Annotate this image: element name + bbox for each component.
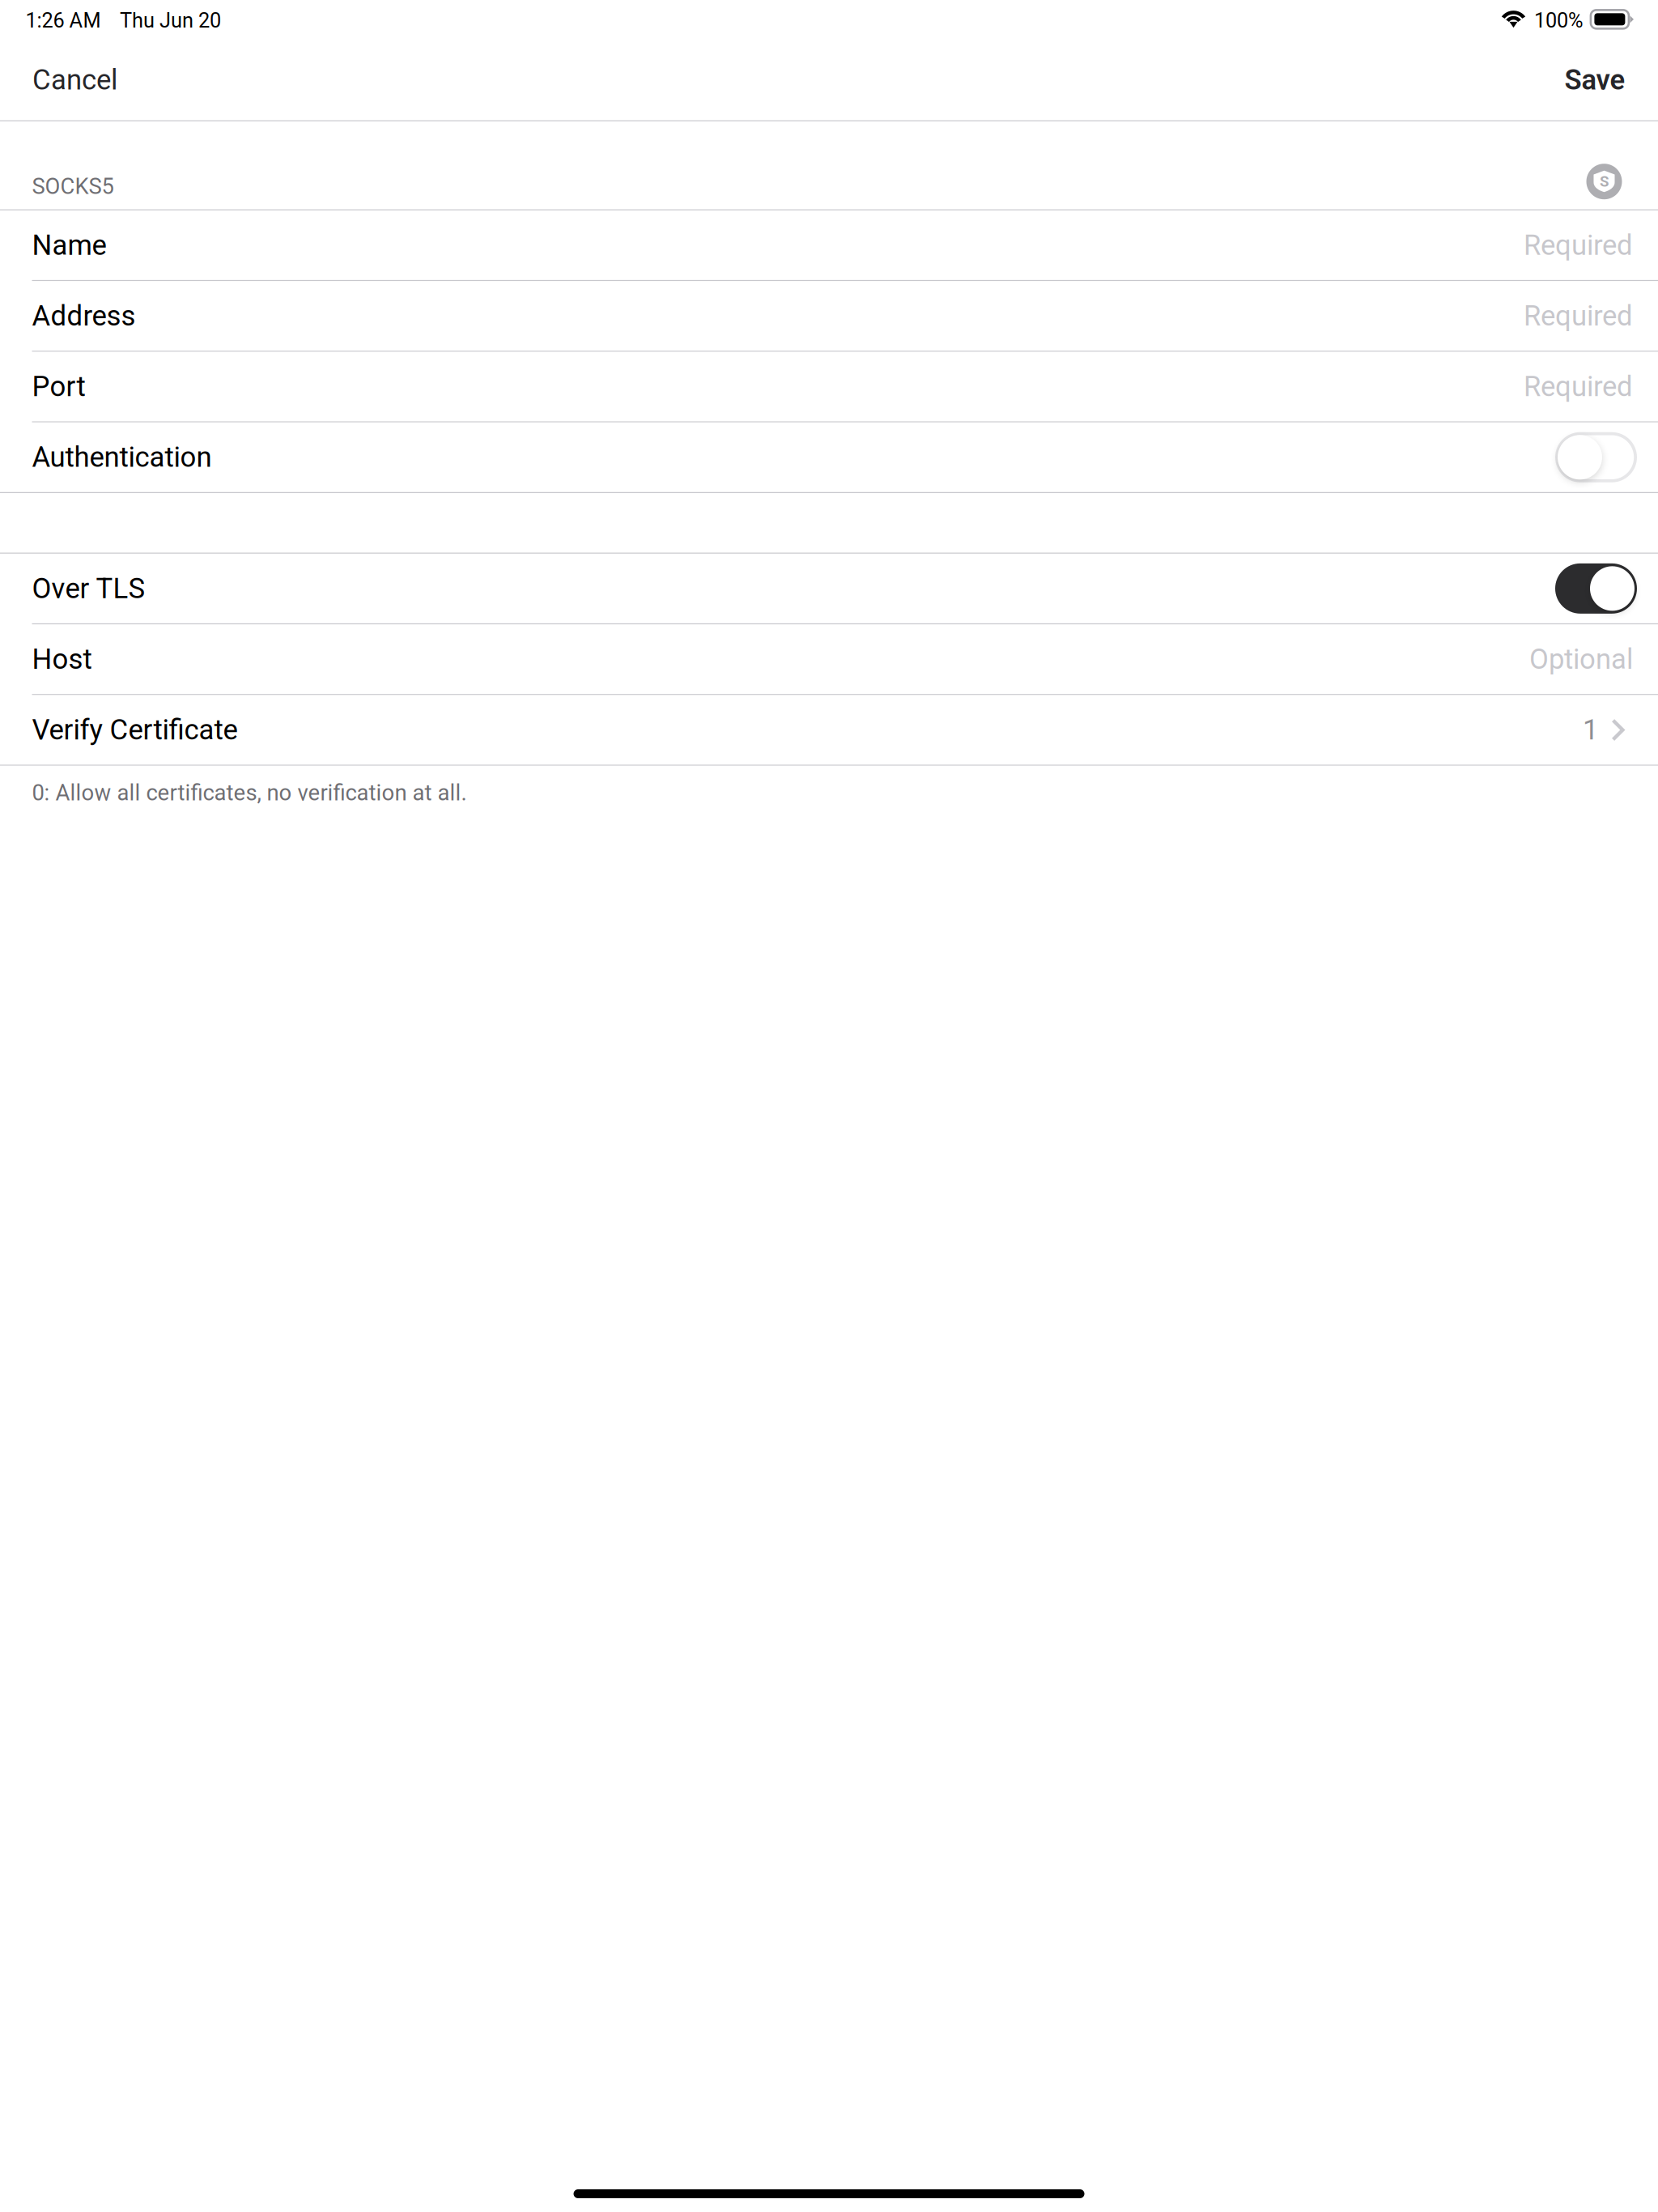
staticText: Name	[32, 229, 106, 262]
button[interactable]: Over TLS	[0, 554, 1658, 623]
staticText: Required	[1524, 370, 1633, 403]
staticText: Address	[32, 299, 136, 332]
button[interactable]: Verify Certificate	[0, 695, 1658, 764]
staticText: Port	[32, 370, 85, 403]
button[interactable]: Host	[0, 625, 1658, 694]
staticText: S	[1600, 173, 1609, 190]
button[interactable]: Save	[1310, 45, 1658, 120]
staticText: Required	[1524, 299, 1633, 332]
staticText: 100%	[1534, 9, 1583, 33]
staticText: Optional	[1529, 643, 1633, 676]
button[interactable]: Port	[0, 352, 1658, 421]
staticText: 0: Allow all certificates, no verificati…	[32, 780, 467, 806]
button[interactable]: Address	[0, 281, 1658, 350]
staticText: Host	[32, 643, 92, 676]
staticText: 1	[1583, 713, 1598, 746]
staticText: 1:26 AM	[26, 9, 101, 33]
button[interactable]: Authentication	[0, 423, 1658, 492]
button[interactable]: Name	[0, 211, 1658, 280]
button[interactable]: Cancel	[0, 45, 348, 120]
staticText: Verify Certificate	[32, 713, 238, 746]
staticText: Over TLS	[32, 572, 145, 605]
staticText: Thu Jun 20	[120, 9, 221, 33]
staticText: Cancel	[32, 63, 117, 96]
staticText: Required	[1524, 229, 1633, 262]
staticText: Authentication	[32, 441, 212, 474]
staticText: Save	[1564, 63, 1625, 96]
staticText: SOCKS5	[32, 173, 114, 199]
